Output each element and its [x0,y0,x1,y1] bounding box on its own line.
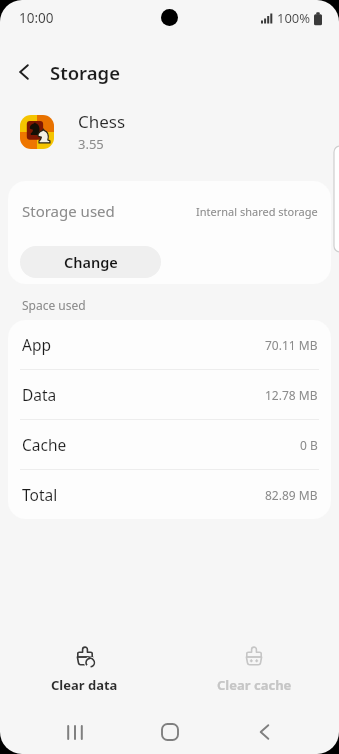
button[interactable] [0,48,48,96]
staticText: Data [22,384,57,405]
button[interactable]: App [8,320,331,369]
staticText: Storage used [22,201,115,221]
staticText: App [22,334,51,355]
button[interactable]: Change [20,246,161,278]
staticText: Change [64,252,118,272]
staticText: 3.55 [78,135,104,153]
staticText: Chess [78,110,126,133]
staticText: 70.11 MB [265,337,318,353]
staticText: Clear data [51,676,118,694]
button[interactable]: Clear data [0,646,169,694]
button[interactable] [150,712,190,752]
staticText: 10:00 [19,9,54,27]
button[interactable] [244,712,284,752]
staticText: Space used [22,297,86,313]
staticText: 12.78 MB [265,387,318,403]
staticText: Cache [22,434,67,455]
button[interactable]: Clear cache [169,646,339,694]
staticText: 82.89 MB [265,487,318,503]
button[interactable]: Cache [8,420,331,469]
button[interactable]: Total [8,470,331,519]
button[interactable]: Data [8,370,331,419]
staticText: Storage [50,60,120,85]
button[interactable] [55,712,95,752]
staticText: Total [22,484,58,505]
staticText: 100% [277,9,311,27]
staticText: Clear cache [217,676,292,694]
staticText: Internal shared storage [196,204,318,219]
staticText: 0 B [300,437,318,453]
